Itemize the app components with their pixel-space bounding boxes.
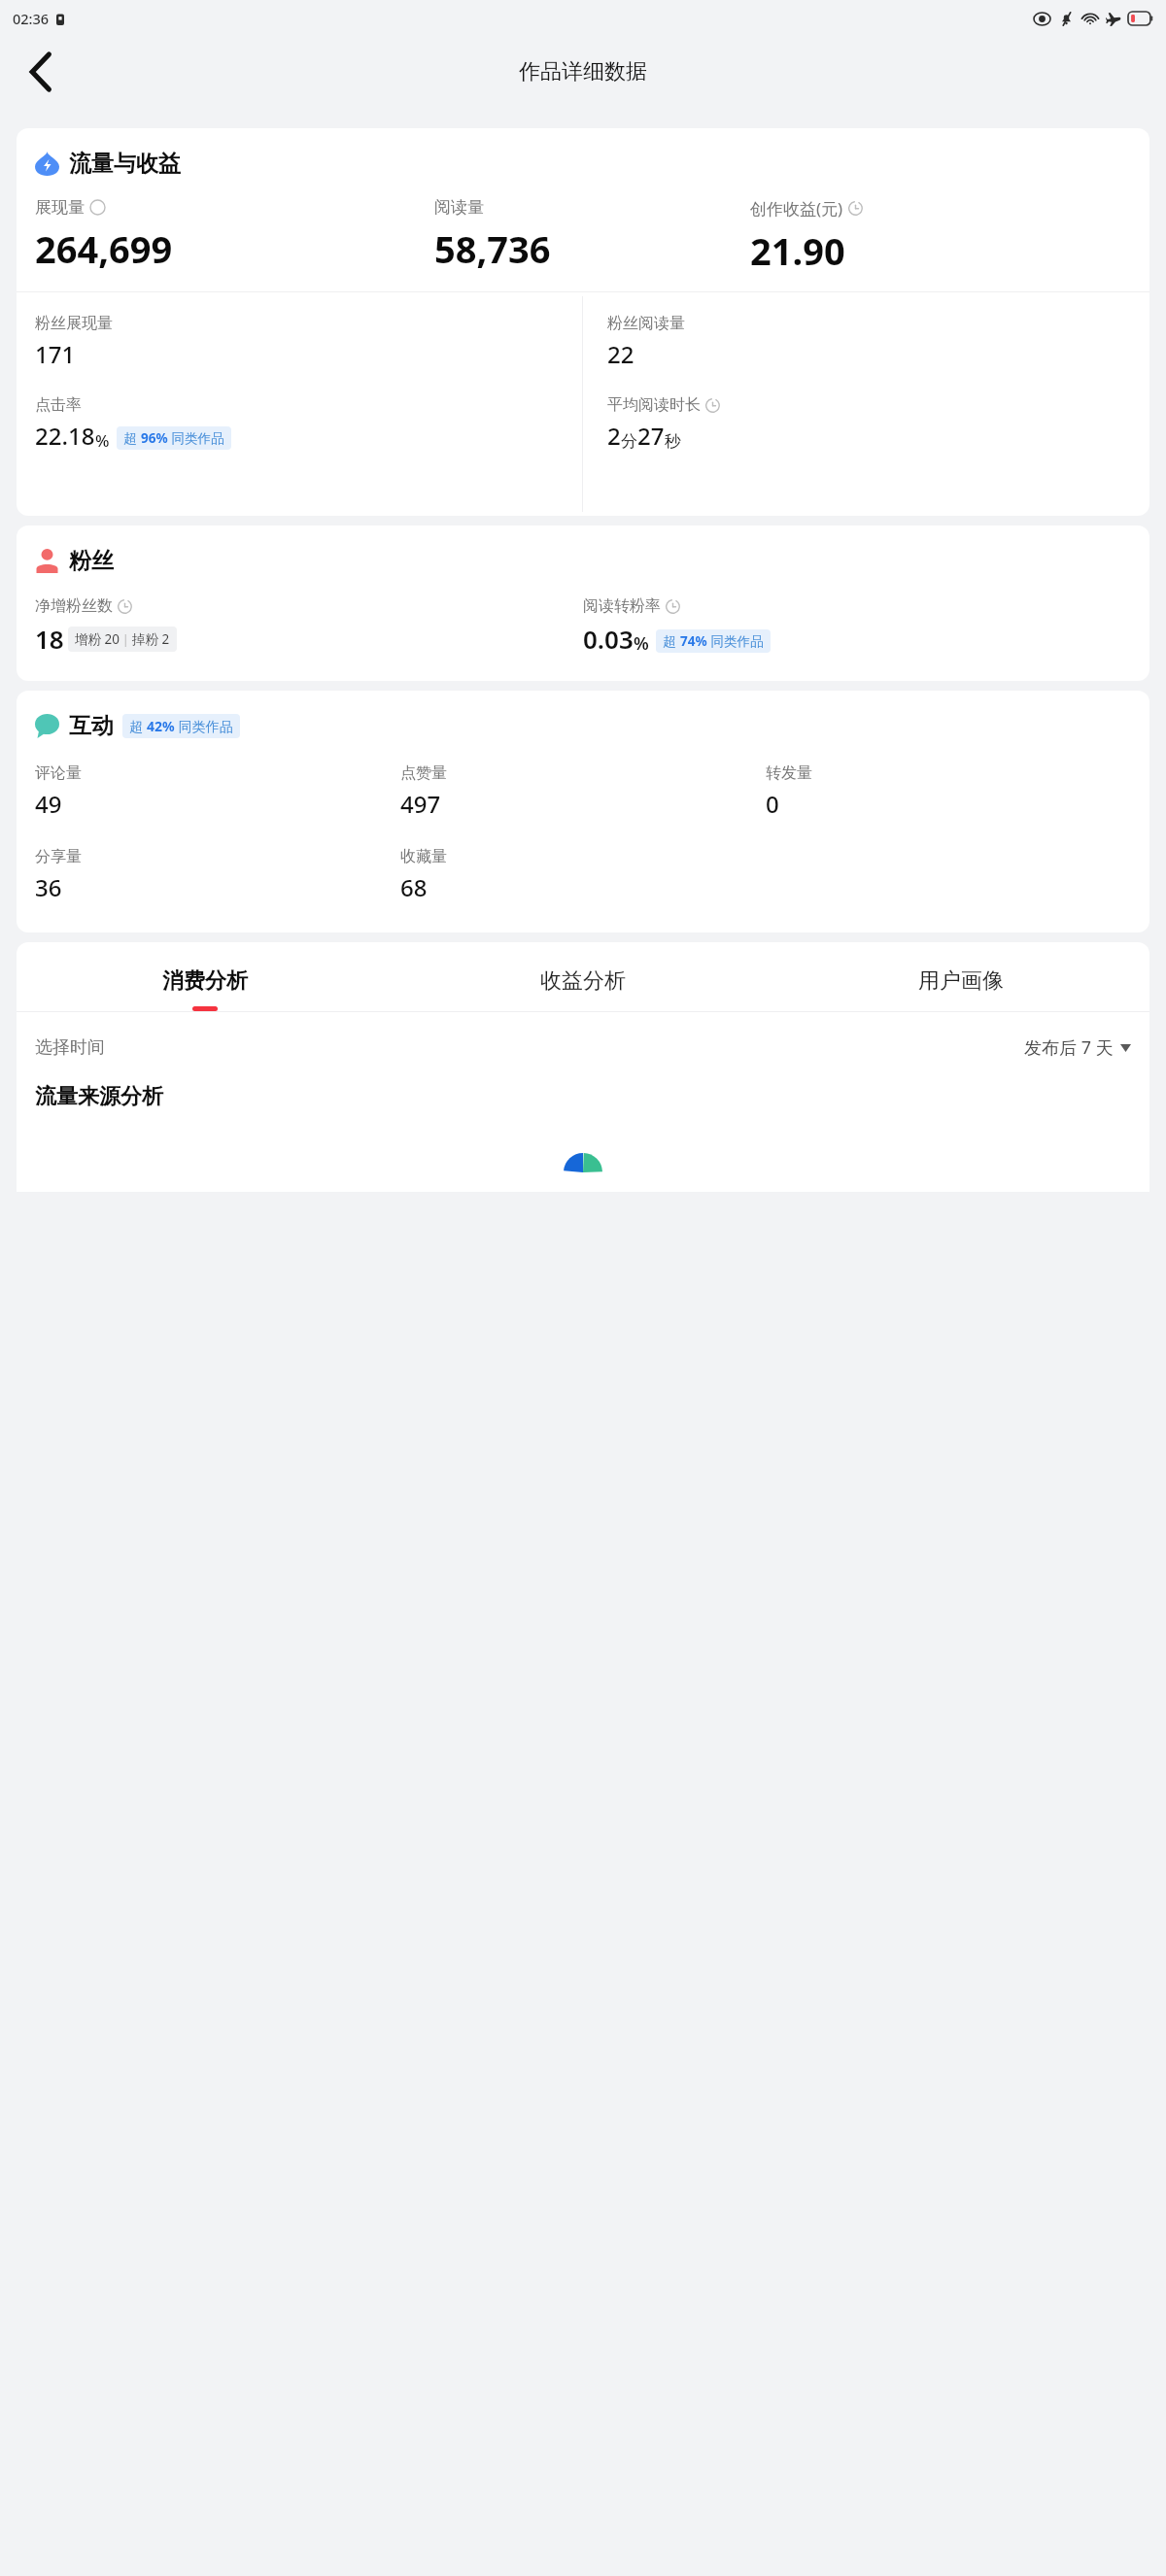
staticText: 消费分析 [162,967,248,995]
staticText: 0 [766,788,779,820]
staticText: 粉丝 [69,547,114,575]
staticText: 超 [663,632,680,650]
staticText: 阅读转粉率 [583,596,661,616]
staticText: 粉丝阅读量 [607,314,685,333]
staticText: 171 [35,338,76,370]
staticText: 264,699 [35,223,173,274]
button[interactable]: 消费分析 [17,967,394,1011]
staticText: 互动 [69,712,114,740]
button[interactable]: 用户画像 [772,967,1149,1011]
staticText: 收藏量 [400,847,447,866]
staticText: 同类作品 [168,429,224,447]
staticText: 22 [607,338,634,370]
staticText: 点赞量 [400,763,447,783]
staticText: 流量来源分析 [35,1083,163,1110]
staticText: 用户画像 [918,967,1004,995]
staticText: 收益分析 [540,967,626,995]
staticText: 分 [621,431,637,452]
staticText: 2 [607,420,621,452]
staticText: 68 [400,871,428,903]
staticText: 同类作品 [175,717,233,735]
staticText: 22.18 [35,420,95,452]
staticText: 秒 [665,431,681,452]
staticText: 平均阅读时长 [607,395,701,415]
staticText: 74% [680,632,707,650]
staticText: 阅读量 [434,197,484,218]
staticText: 分享量 [35,847,82,866]
staticText: 同类作品 [707,632,764,650]
staticText: | [120,631,132,647]
button[interactable]: 收益分析 [394,967,772,1011]
staticText: 展现量 [35,197,85,218]
staticText: 选择时间 [35,1036,105,1059]
button[interactable]: Back [14,45,68,99]
staticText: 49 [35,788,62,820]
staticText: 96% [141,429,168,447]
button[interactable]: 选择时间 [35,1035,1131,1060]
staticText: 作品详细数据 [519,58,647,85]
staticText: 27 [637,420,665,452]
staticText: 点击率 [35,395,82,415]
staticText: 02:36 [13,9,50,28]
staticText: 流量与收益 [69,150,181,178]
staticText: 497 [400,788,441,820]
staticText: 21.90 [750,225,845,276]
staticText: 创作收益(元) [750,197,843,220]
staticText: 评论量 [35,763,82,783]
staticText: 0.03 [583,622,634,656]
staticText: 超 [129,717,147,735]
staticText: 掉粉 2 [132,630,170,648]
staticText: 超 [123,429,141,447]
staticText: 净增粉丝数 [35,596,113,616]
staticText: % [95,429,110,452]
staticText: 36 [35,871,62,903]
staticText: 增粉 20 [75,630,120,648]
staticText: 发布后 7 天 [1024,1035,1114,1060]
staticText: 18 [35,622,64,656]
staticText: 42% [147,717,175,735]
staticText: % [634,631,649,656]
staticText: 转发量 [766,763,812,783]
staticText: 58,736 [434,223,551,274]
staticText: 粉丝展现量 [35,314,113,333]
